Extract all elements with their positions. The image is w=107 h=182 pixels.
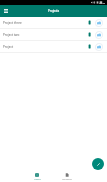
button[interactable]: Project three	[0, 17, 107, 29]
staticText: Project two	[3, 33, 20, 37]
staticText: Projects	[34, 178, 41, 180]
button[interactable]: Project two	[0, 29, 107, 41]
button[interactable]: Projects	[22, 170, 52, 182]
button[interactable]: Project	[0, 41, 107, 53]
button[interactable]: Menu	[0, 5, 11, 17]
button[interactable]: Create project	[92, 158, 104, 170]
staticText: Project three	[3, 21, 22, 25]
staticText: Documents	[62, 178, 72, 180]
staticText: Project	[3, 45, 14, 49]
button[interactable]: Documents	[52, 170, 82, 182]
staticText: Projects	[48, 9, 60, 13]
staticText: 12:30	[99, 1, 106, 4]
